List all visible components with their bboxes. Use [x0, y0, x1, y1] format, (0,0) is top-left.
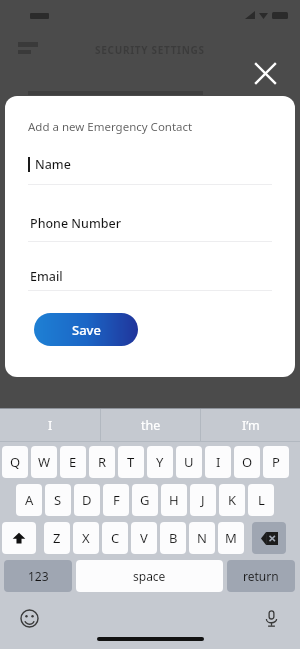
button[interactable]: 123 — [4, 560, 72, 592]
staticText: T — [127, 453, 135, 471]
staticText: X — [82, 529, 90, 547]
staticText: I — [48, 417, 53, 434]
staticText: Phone Number — [30, 215, 121, 232]
staticText: F — [113, 491, 120, 509]
staticText: H — [169, 491, 179, 509]
staticText: Q — [10, 453, 21, 471]
button[interactable]: S — [45, 484, 71, 516]
staticText: Save — [72, 321, 101, 339]
staticText: return — [243, 568, 279, 584]
button[interactable]: return — [227, 560, 295, 592]
button[interactable]: Key — [252, 522, 286, 554]
staticText: O — [242, 453, 253, 471]
staticText: Email — [30, 268, 63, 285]
button[interactable]: I — [0, 409, 100, 441]
button[interactable]: Dictate — [258, 605, 284, 631]
staticText: Add a new Emergency Contact — [28, 119, 193, 135]
button[interactable]: F — [103, 484, 129, 516]
staticText: M — [225, 529, 237, 547]
button[interactable]: T — [118, 446, 144, 478]
button[interactable]: Emoji — [16, 605, 42, 631]
button[interactable]: the — [101, 409, 200, 441]
staticText: G — [140, 491, 150, 509]
staticText: the — [141, 417, 161, 434]
button[interactable]: C — [102, 522, 128, 554]
button[interactable]: B — [160, 522, 186, 554]
staticText: N — [197, 529, 207, 547]
staticText: I — [216, 453, 221, 471]
button[interactable]: Key — [2, 522, 36, 554]
staticText: V — [140, 529, 148, 547]
button[interactable]: G — [132, 484, 158, 516]
button[interactable]: R — [89, 446, 115, 478]
staticText: 123 — [28, 568, 49, 584]
button[interactable]: D — [74, 484, 100, 516]
staticText: P — [272, 453, 280, 471]
staticText: D — [82, 491, 92, 509]
button[interactable]: H — [161, 484, 187, 516]
button[interactable]: space — [76, 560, 223, 592]
button[interactable]: Y — [147, 446, 173, 478]
button[interactable]: P — [263, 446, 289, 478]
staticText: Y — [156, 453, 164, 471]
staticText: A — [25, 491, 34, 509]
button[interactable]: Close — [249, 57, 281, 89]
button[interactable]: L — [248, 484, 274, 516]
button[interactable]: A — [16, 484, 42, 516]
button[interactable]: Save — [34, 313, 138, 346]
staticText: W — [38, 453, 51, 471]
staticText: SECURITY SETTINGS — [95, 43, 205, 57]
button[interactable]: U — [176, 446, 202, 478]
staticText: Name — [35, 156, 71, 173]
button[interactable]: W — [31, 446, 57, 478]
button[interactable]: N — [189, 522, 215, 554]
staticText: C — [111, 529, 120, 547]
staticText: I’m — [242, 417, 260, 434]
button[interactable]: Q — [2, 446, 28, 478]
staticText: space — [133, 568, 166, 584]
button[interactable]: Z — [44, 522, 70, 554]
staticText: R — [98, 453, 107, 471]
button[interactable]: K — [219, 484, 245, 516]
button[interactable]: J — [190, 484, 216, 516]
button[interactable]: E — [60, 446, 86, 478]
button[interactable]: O — [234, 446, 260, 478]
button[interactable]: M — [218, 522, 244, 554]
button[interactable]: I — [205, 446, 231, 478]
staticText: B — [169, 529, 178, 547]
button[interactable]: V — [131, 522, 157, 554]
staticText: L — [258, 491, 265, 509]
staticText: U — [184, 453, 194, 471]
staticText: Z — [53, 529, 61, 547]
button[interactable]: I’m — [201, 409, 300, 441]
staticText: J — [201, 491, 205, 509]
staticText: E — [69, 453, 77, 471]
staticText: S — [54, 491, 62, 509]
staticText: K — [228, 491, 237, 509]
button[interactable]: X — [73, 522, 99, 554]
